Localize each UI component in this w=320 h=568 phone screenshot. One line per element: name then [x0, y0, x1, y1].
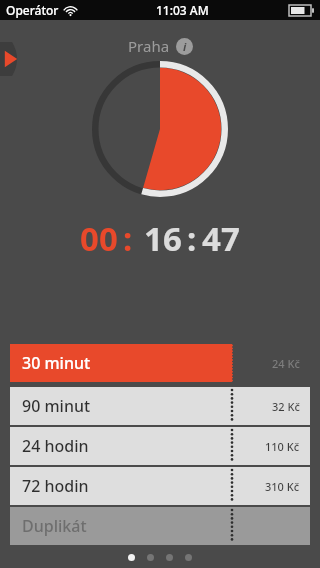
- staticText: 47: [202, 216, 240, 258]
- staticText: 24 hodin: [22, 435, 89, 457]
- staticText: 24 Kč: [272, 356, 300, 371]
- button[interactable]: Duplikát: [10, 507, 310, 545]
- staticText: 72 hodin: [22, 475, 89, 497]
- button[interactable]: 72 hodin: [10, 467, 310, 505]
- staticText: 11:03 AM: [156, 2, 209, 18]
- staticText: 16: [144, 216, 182, 258]
- staticText: :: [123, 216, 133, 258]
- staticText: Duplikát: [22, 515, 87, 537]
- staticText: 110 Kč: [265, 439, 300, 454]
- staticText: i: [183, 39, 187, 54]
- staticText: Operátor: [6, 2, 59, 18]
- staticText: 310 Kč: [265, 479, 300, 494]
- button[interactable]: Open menu: [0, 42, 22, 76]
- staticText: 30 minut: [22, 352, 91, 374]
- staticText: 32 Kč: [272, 399, 300, 414]
- button[interactable]: Info: [176, 38, 193, 55]
- staticText: :: [187, 216, 197, 258]
- staticText: 00: [80, 216, 118, 258]
- button[interactable]: 90 minut: [10, 387, 310, 425]
- button[interactable]: 30 minut: [10, 344, 310, 382]
- staticText: 90 minut: [22, 395, 91, 417]
- staticText: Praha: [128, 36, 170, 56]
- button[interactable]: 24 hodin: [10, 427, 310, 465]
